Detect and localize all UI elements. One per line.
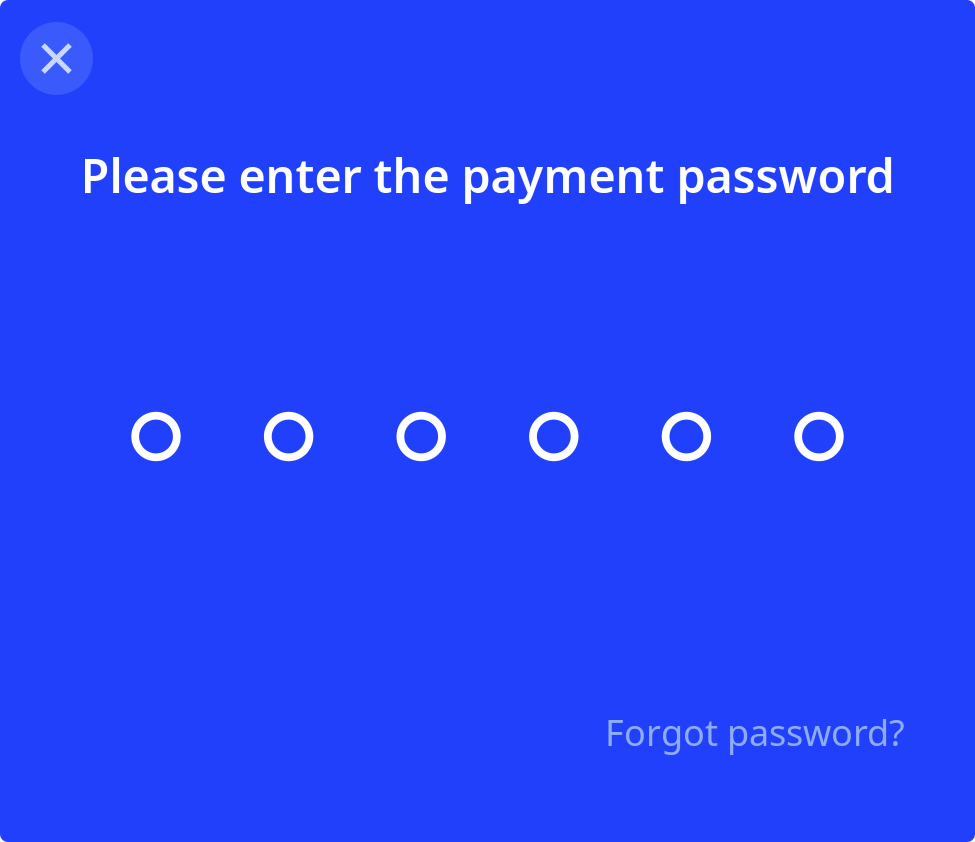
button[interactable]: Forgot password? bbox=[605, 710, 905, 754]
staticText: Forgot password? bbox=[605, 708, 905, 756]
button[interactable]: Close bbox=[20, 22, 93, 95]
button[interactable]: Payment password, 6 digits bbox=[0, 411, 975, 462]
staticText: Please enter the payment password bbox=[80, 144, 894, 206]
